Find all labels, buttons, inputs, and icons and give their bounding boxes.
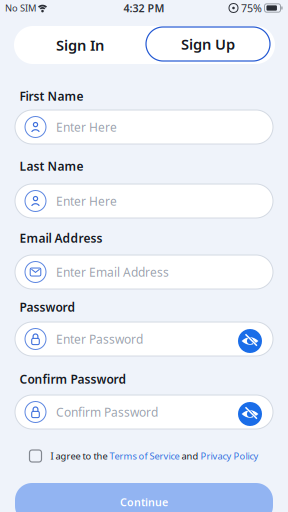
staticText: Last Name xyxy=(19,158,83,174)
staticText: Enter Email Address xyxy=(56,264,169,280)
button[interactable]: Enter Email Address xyxy=(15,255,273,289)
button[interactable]: Terms of Service xyxy=(109,450,179,462)
staticText: Enter Here xyxy=(56,193,117,209)
staticText: Password xyxy=(19,299,75,315)
button[interactable]: Enter Here xyxy=(15,184,273,218)
button[interactable] xyxy=(29,450,41,462)
staticText: Confirm Password xyxy=(56,404,158,420)
button[interactable]: Confirm Password xyxy=(15,395,273,429)
staticText: Privacy Policy xyxy=(200,450,258,462)
button[interactable] xyxy=(238,402,262,426)
staticText: Sign Up xyxy=(181,34,235,54)
staticText: and xyxy=(179,450,200,462)
staticText: First Name xyxy=(19,88,83,104)
staticText: Confirm Password xyxy=(19,371,126,387)
button[interactable]: Privacy Policy xyxy=(200,450,258,462)
staticText: 75% xyxy=(241,1,262,15)
button[interactable]: Continue xyxy=(15,483,273,512)
staticText: 4:32 PM xyxy=(123,1,164,15)
button[interactable] xyxy=(238,329,262,353)
button[interactable]: Sign In xyxy=(20,26,140,64)
staticText: No SIM xyxy=(5,2,36,14)
staticText: I agree to the xyxy=(50,450,109,462)
staticText: Sign In xyxy=(56,35,104,55)
button[interactable]: Enter Here xyxy=(15,110,273,144)
staticText: Email Address xyxy=(19,230,102,246)
staticText: Enter Here xyxy=(56,119,117,135)
staticText: Terms of Service xyxy=(109,450,179,462)
staticText: Continue xyxy=(120,495,168,509)
button[interactable]: Enter Password xyxy=(15,322,273,356)
button[interactable]: Sign Up xyxy=(146,27,270,61)
staticText: Enter Password xyxy=(56,331,143,347)
